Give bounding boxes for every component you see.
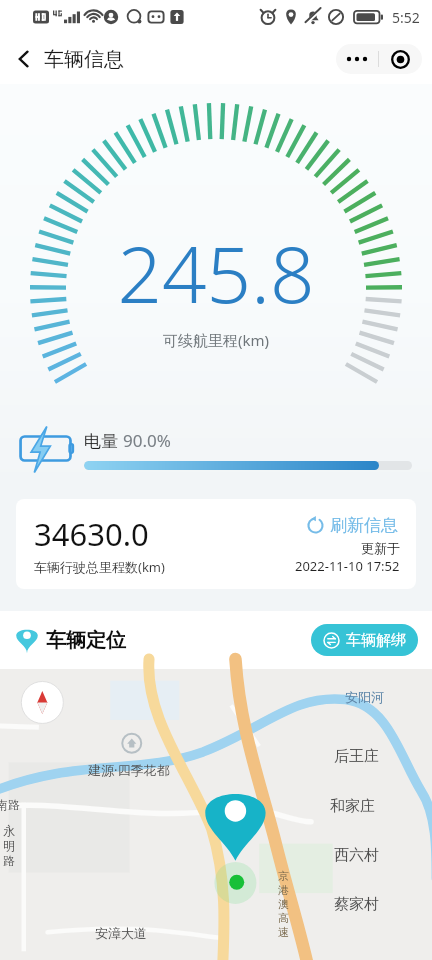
staticText: 安阳河	[345, 689, 384, 705]
staticText: 南路	[0, 797, 20, 812]
staticText: 后王庄	[334, 747, 379, 766]
staticText: 路	[3, 853, 15, 868]
button[interactable]: 车辆位置地图	[0, 669, 432, 960]
button[interactable]: 刷新信息	[304, 513, 400, 538]
button[interactable]: 34630.0	[16, 499, 416, 589]
staticText: 速	[278, 925, 289, 939]
staticText: 京	[278, 869, 289, 883]
staticText: 安漳大道	[95, 925, 147, 941]
staticText: 2022-11-10 17:52	[295, 557, 400, 575]
staticText: 蔡家村	[334, 895, 379, 914]
staticText: 澳	[278, 897, 289, 911]
staticText: 港	[278, 883, 289, 897]
staticText: 高	[278, 911, 289, 925]
staticText: 车辆解绑	[346, 631, 406, 650]
staticText: 西六村	[334, 846, 379, 865]
staticText: 90.0%	[123, 429, 171, 452]
staticText: 车辆行驶总里程数(km)	[34, 558, 165, 576]
staticText: 车辆定位	[46, 628, 126, 653]
staticText: 和家庄	[330, 797, 375, 816]
staticText: 245.8	[117, 220, 315, 326]
button[interactable]: More options	[336, 44, 378, 74]
button[interactable]: 车辆解绑	[311, 624, 418, 656]
staticText: 更新于	[361, 540, 400, 556]
staticText: 车辆信息	[44, 47, 124, 72]
staticText: 永	[3, 823, 15, 838]
button[interactable]: Back	[4, 39, 44, 79]
staticText: 建源·四季花都	[88, 761, 170, 779]
staticText: 5:52	[392, 8, 420, 27]
staticText: 可续航里程(km)	[163, 330, 270, 350]
staticText: 刷新信息	[330, 515, 398, 536]
staticText: 明	[3, 838, 15, 853]
staticText: 34630.0	[34, 513, 149, 555]
staticText: 电量	[84, 431, 118, 452]
button[interactable]: Close mini program	[379, 44, 422, 74]
